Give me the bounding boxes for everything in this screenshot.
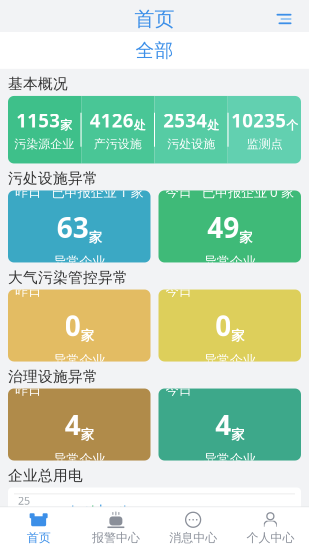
staticText: 异常企业 [204, 254, 256, 270]
button[interactable]: 今日 [158, 289, 301, 361]
staticText: 异常企业 [53, 352, 105, 368]
staticText: 已申报企业 1 家 [51, 183, 143, 201]
button[interactable]: 昨日 [8, 190, 150, 262]
staticText: 1153 [16, 108, 60, 133]
staticText: 处 [134, 118, 146, 133]
staticText: 63 [57, 209, 89, 246]
staticText: 污染源企业 [14, 137, 74, 151]
staticText: 家 [239, 229, 252, 246]
staticText: 异常企业 [204, 451, 256, 467]
staticText: 监测点 [247, 137, 283, 151]
button[interactable]: 昨日 [8, 388, 150, 460]
staticText: 4126 [90, 108, 134, 133]
staticText: 企业总用电 [8, 466, 83, 484]
staticText: 个 [286, 118, 298, 133]
staticText: 首页 [134, 7, 174, 31]
staticText: 污处设施 [167, 137, 215, 151]
staticText: 消息中心 [169, 530, 217, 545]
staticText: 已申报企业 0 家 [202, 183, 294, 201]
staticText: 昨日 [15, 183, 41, 200]
staticText: 10235 [231, 108, 286, 133]
staticText: 家 [89, 229, 102, 246]
staticText: 家 [231, 427, 244, 443]
staticText: 基本概况 [8, 75, 68, 93]
staticText: 处 [207, 118, 219, 133]
staticText: 报警中心 [92, 530, 140, 545]
staticText: 大气污染管控异常 [8, 268, 128, 286]
staticText: 49 [207, 209, 239, 246]
button[interactable]: 今日 [158, 388, 301, 460]
button[interactable]: 消息中心 [154, 507, 232, 550]
staticText: 异常企业 [53, 451, 105, 467]
staticText: 昨日 [15, 382, 41, 398]
staticText: 污处设施异常 [8, 169, 98, 187]
staticText: 个人中心 [246, 530, 294, 545]
staticText: 20 [18, 519, 30, 534]
staticText: 产污设施 [94, 137, 142, 151]
staticText: 0 [65, 307, 81, 344]
button[interactable]: Menu [267, 6, 301, 32]
staticText: 0 [215, 307, 231, 344]
button[interactable]: 1153 [0, 96, 309, 163]
staticText: 治理设施异常 [8, 367, 98, 385]
staticText: 家 [231, 328, 244, 344]
button[interactable]: 首页 [0, 507, 77, 550]
button[interactable]: 今日 [158, 190, 301, 262]
staticText: 今日 [165, 282, 191, 299]
staticText: 家 [60, 118, 72, 133]
staticText: 全部 [135, 39, 173, 62]
button[interactable]: 报警中心 [77, 507, 154, 550]
staticText: 今日 [165, 183, 191, 200]
button[interactable]: 全部 [0, 32, 309, 69]
staticText: 异常企业 [53, 254, 105, 270]
staticText: 昨日 [15, 282, 41, 299]
staticText: 今日 [165, 382, 191, 398]
staticText: 4 [215, 406, 231, 443]
button[interactable]: 个人中心 [232, 507, 309, 550]
staticText: 家 [81, 427, 94, 443]
staticText: 首页 [27, 530, 51, 545]
staticText: 25 [18, 493, 30, 508]
staticText: 家 [81, 328, 94, 344]
button[interactable]: 昨日 [8, 289, 150, 361]
staticText: 异常企业 [204, 352, 256, 368]
staticText: 4 [65, 406, 81, 443]
staticText: 2534 [163, 108, 207, 133]
